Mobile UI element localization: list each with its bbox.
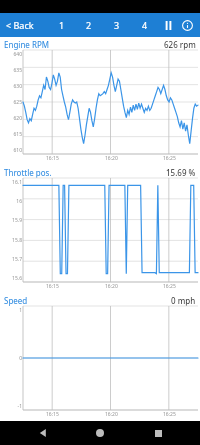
staticText: 16:15 (46, 155, 59, 162)
button[interactable]: Recents (143, 421, 173, 445)
button[interactable]: 3 (103, 13, 131, 37)
staticText: 16:15 (46, 283, 59, 290)
staticText: 2 (86, 19, 92, 31)
staticText: 615 (13, 131, 22, 138)
staticText: 630 (13, 83, 22, 90)
staticText: Throttle pos. (4, 167, 52, 178)
staticText: -1 (17, 403, 22, 410)
staticText: 15.7 (12, 256, 22, 263)
staticText: 16:15 (46, 411, 59, 418)
staticText: 16.1 (12, 179, 22, 186)
staticText: 16 (16, 198, 22, 205)
staticText: 16:25 (163, 411, 176, 418)
staticText: 16:25 (163, 155, 176, 162)
staticText: 15.69 % (166, 167, 196, 178)
staticText: Engine RPM (4, 39, 49, 50)
staticText: 16:20 (105, 411, 118, 418)
staticText: 1 (19, 307, 22, 314)
staticText: 1 (59, 19, 65, 31)
staticText: 15.8 (12, 237, 22, 244)
staticText: 16:20 (105, 283, 118, 290)
button[interactable]: Info (177, 13, 197, 37)
button[interactable]: Back (28, 421, 58, 445)
staticText: 626 rpm (164, 39, 196, 50)
staticText: 610 (13, 147, 22, 154)
staticText: 625 (13, 99, 22, 106)
staticText: 15.9 (12, 217, 22, 224)
button[interactable]: 4 (131, 13, 159, 37)
staticText: 15.6 (12, 275, 22, 282)
staticText: 16:25 (163, 283, 176, 290)
button[interactable]: < Back (0, 19, 40, 31)
staticText: 4 (142, 19, 148, 31)
staticText: 0 (19, 355, 22, 362)
button[interactable]: Pause (159, 13, 177, 37)
staticText: 0 mph (171, 295, 196, 306)
staticText: 16:20 (105, 155, 118, 162)
staticText: Speed (4, 295, 28, 306)
staticText: 635 (13, 67, 22, 74)
staticText: 640 (13, 51, 22, 58)
button[interactable]: Home (85, 421, 115, 445)
button[interactable]: 2 (75, 13, 103, 37)
staticText: 3 (114, 19, 120, 31)
staticText: 620 (13, 115, 22, 122)
staticText: < Back (6, 19, 34, 31)
button[interactable]: 1 (48, 13, 75, 37)
